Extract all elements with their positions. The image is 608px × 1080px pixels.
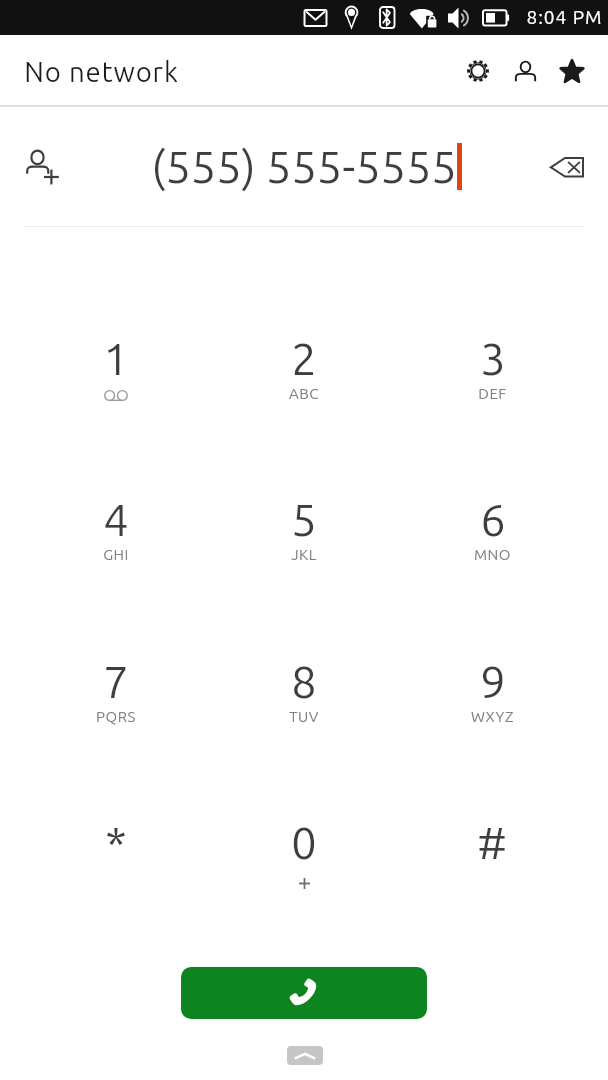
- staticText: 8: [291, 656, 317, 706]
- staticText: 6: [480, 494, 506, 544]
- staticText: 7: [103, 656, 129, 706]
- staticText: (555) 555-5555: [151, 141, 457, 191]
- button[interactable]: 7: [22, 612, 210, 773]
- button[interactable]: 9: [398, 612, 586, 773]
- staticText: 9: [480, 656, 506, 706]
- button[interactable]: 2: [210, 289, 398, 450]
- staticText: MNO: [474, 546, 511, 563]
- button[interactable]: 6: [398, 450, 586, 611]
- staticText: 2: [291, 333, 317, 383]
- staticText: No network: [24, 56, 179, 87]
- staticText: 8:04 PM: [526, 6, 603, 27]
- staticText: 0: [291, 817, 317, 867]
- staticText: #: [477, 817, 507, 867]
- button[interactable]: 1: [22, 289, 210, 450]
- staticText: WXYZ: [471, 708, 514, 725]
- button[interactable]: Settings: [454, 47, 502, 95]
- staticText: 1: [103, 333, 129, 383]
- staticText: 4: [103, 494, 129, 544]
- button[interactable]: *: [22, 773, 210, 934]
- button[interactable]: #: [398, 773, 586, 934]
- staticText: TUV: [289, 708, 319, 725]
- button[interactable]: 3: [398, 289, 586, 450]
- button[interactable]: Expand: [287, 1046, 323, 1065]
- staticText: ABC: [289, 385, 319, 402]
- button[interactable]: 8: [210, 612, 398, 773]
- button[interactable]: Favorites: [548, 47, 596, 95]
- staticText: PQRS: [96, 708, 136, 725]
- button[interactable]: Backspace: [540, 136, 600, 196]
- button[interactable]: Contacts: [501, 47, 549, 95]
- button[interactable]: 5: [210, 450, 398, 611]
- staticText: JKL: [291, 546, 317, 563]
- staticText: GHI: [103, 546, 129, 563]
- button[interactable]: Add contact: [10, 134, 74, 198]
- staticText: *: [105, 817, 127, 867]
- staticText: 3: [480, 333, 506, 383]
- button[interactable]: 4: [22, 450, 210, 611]
- button[interactable]: Call: [181, 967, 427, 1019]
- staticText: DEF: [478, 385, 507, 402]
- staticText: 5: [291, 494, 317, 544]
- button[interactable]: 0: [210, 773, 398, 934]
